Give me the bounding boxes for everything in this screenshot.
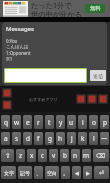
button[interactable]: x xyxy=(27,149,36,162)
button[interactable]: e xyxy=(23,115,32,129)
staticText: 、 xyxy=(36,169,42,177)
staticText: s xyxy=(15,134,19,143)
staticText: u xyxy=(69,118,74,127)
button[interactable]: v xyxy=(49,149,58,162)
button[interactable]: w xyxy=(12,115,21,129)
staticText: b xyxy=(63,151,67,160)
button[interactable]: q xyxy=(1,115,10,129)
button[interactable]: ▶ xyxy=(83,166,92,179)
button[interactable]: 記号 xyxy=(18,166,32,179)
staticText: f xyxy=(37,134,40,143)
staticText: t xyxy=(48,118,51,127)
staticText: p xyxy=(103,118,107,127)
button[interactable]: 、 xyxy=(34,166,43,179)
button[interactable]: 空白 xyxy=(45,166,59,179)
staticText: v xyxy=(52,151,56,160)
button[interactable]: s xyxy=(12,132,21,145)
staticText: m xyxy=(83,151,90,160)
staticText: w xyxy=(14,118,20,127)
staticText: g xyxy=(48,134,52,143)
staticText: 文字 xyxy=(4,170,14,176)
button[interactable]: z xyxy=(16,149,25,162)
staticText: o xyxy=(92,118,96,127)
staticText: n xyxy=(73,151,78,160)
button[interactable]: g xyxy=(45,132,54,145)
button[interactable]: たった1分で xyxy=(0,0,110,17)
staticText: ⌫ xyxy=(96,152,106,160)
button[interactable]: r xyxy=(34,115,43,129)
staticText: 。 xyxy=(63,169,69,177)
staticText: 記号 xyxy=(20,170,30,176)
button[interactable]: o xyxy=(89,115,98,129)
staticText: c xyxy=(41,151,45,160)
staticText: i xyxy=(82,118,84,127)
button[interactable]: 文字 xyxy=(1,166,16,179)
staticText: q xyxy=(4,118,8,127)
staticText: 世の中が分かる xyxy=(31,10,82,17)
staticText: ⇧ xyxy=(5,152,11,160)
button[interactable]: h xyxy=(56,132,65,145)
staticText: こんばんは xyxy=(6,44,29,50)
staticText: 1:Opponent xyxy=(6,50,31,56)
button[interactable]: y xyxy=(56,115,65,129)
button[interactable]: ⇧ xyxy=(1,149,14,162)
staticText: j xyxy=(71,134,73,143)
staticText: Messages xyxy=(6,25,34,33)
staticText: z xyxy=(19,151,23,160)
button[interactable]: j xyxy=(67,132,76,145)
button[interactable]: ◀ xyxy=(72,166,81,179)
staticText: e xyxy=(26,118,30,127)
button[interactable]: c xyxy=(38,149,47,162)
button[interactable] xyxy=(4,68,87,83)
staticText: たった1分で xyxy=(31,0,72,10)
staticText: 0:You xyxy=(6,38,18,44)
staticText: x xyxy=(30,151,34,160)
staticText: ⏎ xyxy=(99,169,105,176)
button[interactable]: ー xyxy=(100,132,109,145)
button[interactable]: p xyxy=(100,115,109,129)
staticText: ◀ xyxy=(75,170,79,176)
button[interactable]: 。 xyxy=(61,166,70,179)
staticText: ▶ xyxy=(86,170,90,176)
button[interactable]: おすすめアプリ xyxy=(0,86,110,112)
button[interactable]: 無料 xyxy=(85,4,105,13)
staticText: h xyxy=(58,134,63,143)
staticText: y xyxy=(59,118,63,127)
staticText: おすすめアプリ xyxy=(29,97,58,102)
button[interactable]: t xyxy=(45,115,54,129)
button[interactable]: k xyxy=(78,132,87,145)
button[interactable]: u xyxy=(67,115,76,129)
button[interactable]: d xyxy=(23,132,32,145)
staticText: d xyxy=(26,134,30,143)
button[interactable]: i xyxy=(78,115,87,129)
button[interactable]: 送信 xyxy=(90,70,106,81)
staticText: ー xyxy=(101,135,108,143)
staticText: k xyxy=(81,134,85,143)
button[interactable]: n xyxy=(71,149,80,162)
staticText: 無料 xyxy=(90,5,101,12)
staticText: r xyxy=(37,118,40,127)
button[interactable]: a xyxy=(1,132,10,145)
staticText: 空白 xyxy=(47,170,57,176)
staticText: l xyxy=(93,134,95,143)
staticText: ※1 xyxy=(6,56,13,62)
button[interactable]: ⏎ xyxy=(94,166,109,179)
button[interactable]: f xyxy=(34,132,43,145)
button[interactable]: m xyxy=(82,149,91,162)
button[interactable]: ⌫ xyxy=(93,149,109,162)
staticText: 送信 xyxy=(93,73,103,79)
staticText: a xyxy=(4,134,8,143)
button[interactable]: l xyxy=(89,132,98,145)
button[interactable]: b xyxy=(60,149,69,162)
